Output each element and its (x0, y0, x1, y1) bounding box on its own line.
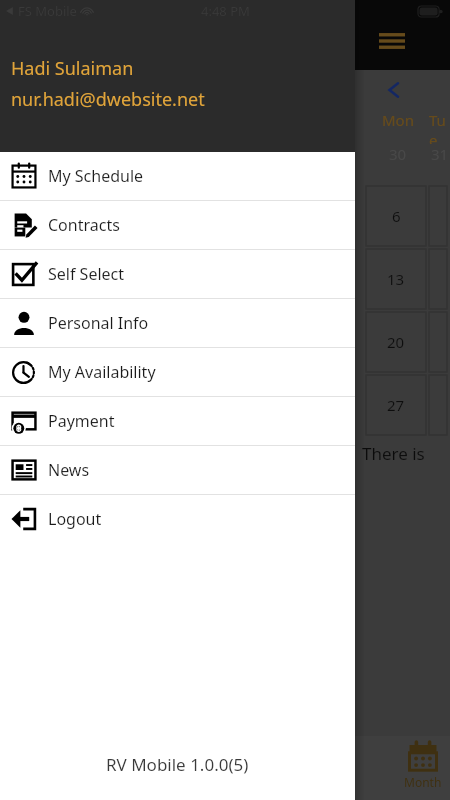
staticText: 6 (392, 206, 401, 226)
staticText: 27 (387, 395, 405, 415)
staticText: nur.hadi@dwebsite.net (11, 87, 205, 112)
staticText: 31 (431, 144, 449, 164)
button[interactable]: Month (404, 742, 442, 790)
staticText: There is no... (362, 442, 450, 465)
staticText: 30 (389, 144, 407, 164)
staticText: Personal Info (48, 312, 149, 334)
staticText: RV Mobile 1.0.0(5) (106, 753, 249, 776)
staticText: Logout (48, 508, 102, 530)
staticText: Contracts (48, 214, 120, 236)
staticText: FS Mobile (18, 2, 77, 20)
button[interactable]: My Availability (0, 348, 355, 396)
staticText: Mon (382, 110, 414, 130)
staticText: Hadi Sulaiman (11, 56, 134, 81)
button[interactable]: My Schedule (0, 152, 355, 200)
button[interactable]: Payment (0, 397, 355, 445)
button[interactable]: News (0, 446, 355, 494)
button[interactable]: Personal Info (0, 299, 355, 347)
button[interactable]: Previous month (380, 76, 408, 104)
staticText: Self Select (48, 263, 125, 285)
staticText: 20 (387, 332, 405, 352)
button[interactable]: Self Select (0, 250, 355, 298)
button[interactable]: 6 (366, 186, 426, 246)
staticText: 13 (387, 269, 405, 289)
button[interactable]: 20 (366, 312, 426, 372)
staticText: My Schedule (48, 165, 144, 187)
staticText: Month (404, 774, 442, 790)
staticText: Tue (429, 110, 450, 144)
button[interactable]: Open navigation menu (375, 24, 409, 58)
button[interactable]: 13 (366, 249, 426, 309)
staticText: News (48, 459, 90, 481)
button[interactable]: Contracts (0, 201, 355, 249)
staticText: 4:48 PM (201, 2, 250, 20)
staticText: Payment (48, 410, 115, 432)
staticText: My Availability (48, 361, 156, 383)
button[interactable]: Logout (0, 495, 355, 543)
button[interactable]: 27 (366, 375, 426, 435)
